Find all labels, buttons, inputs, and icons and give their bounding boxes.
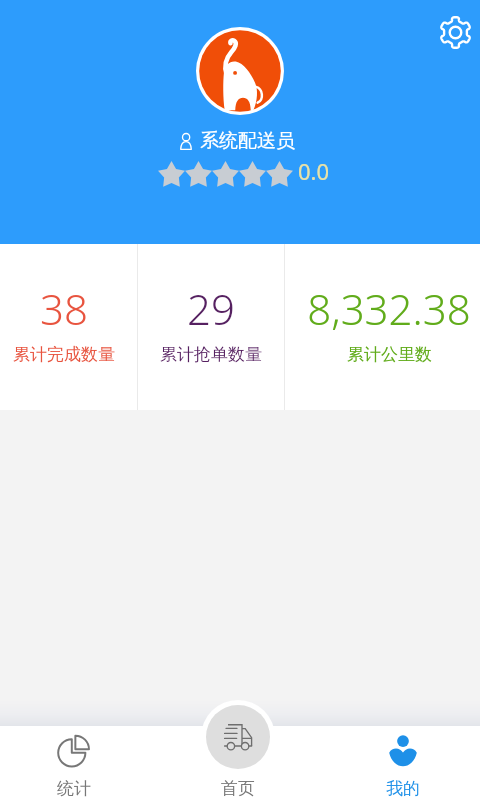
staticText: 累计完成数量 [13, 344, 115, 365]
button[interactable]: 38 [0, 244, 137, 410]
staticText: 8,332.38 [307, 280, 471, 337]
staticText: 0.0 [298, 156, 330, 186]
button[interactable]: 8,332.38 [285, 244, 480, 410]
staticText: 系统配送员 [200, 129, 295, 153]
button[interactable]: Settings [437, 14, 473, 50]
button[interactable]: Home [201, 700, 275, 774]
staticText: 累计公里数 [347, 344, 432, 365]
button[interactable]: 首页 [160, 726, 320, 800]
staticText: 统计 [57, 778, 91, 799]
staticText: 我的 [386, 778, 420, 799]
staticText: 38 [40, 280, 88, 337]
button[interactable] [196, 27, 284, 115]
staticText: 29 [187, 280, 235, 337]
button[interactable]: 我的 [320, 726, 480, 800]
button[interactable]: 统计 [0, 726, 160, 800]
staticText: 首页 [221, 778, 255, 799]
button[interactable]: 29 [138, 244, 284, 410]
staticText: 累计抢单数量 [160, 344, 262, 365]
